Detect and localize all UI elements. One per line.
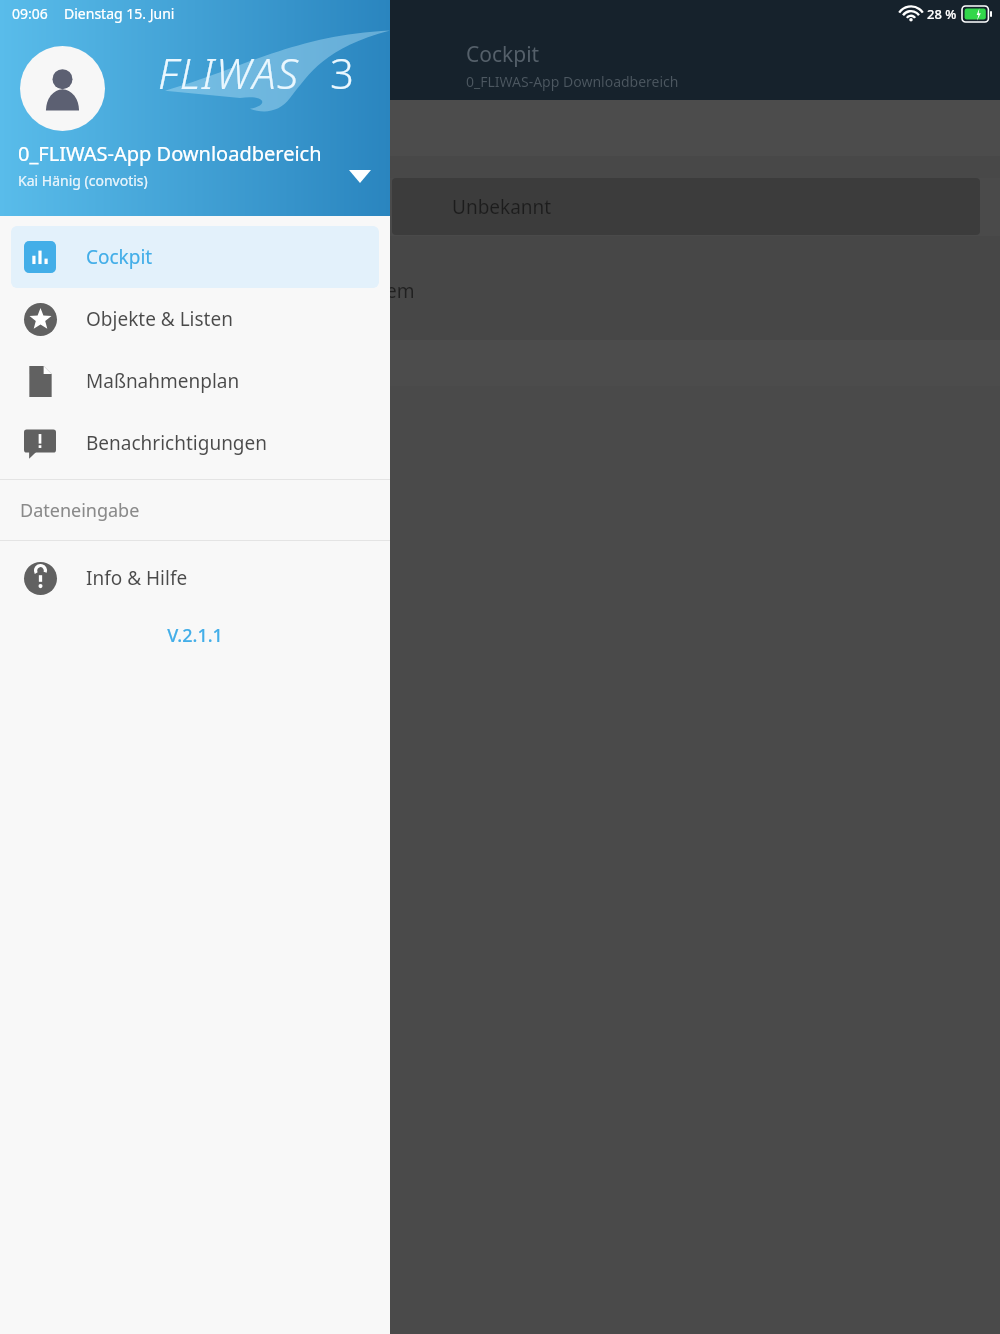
- staticText: 3: [330, 44, 354, 101]
- staticText: Unbekannt: [452, 194, 552, 220]
- staticText: Kai Hänig (convotis): [18, 171, 148, 190]
- button[interactable]: Info & Hilfe: [11, 547, 379, 609]
- staticText: em: [386, 278, 415, 304]
- staticText: Cockpit: [466, 40, 540, 69]
- button[interactable]: Cockpit: [11, 226, 379, 288]
- button[interactable]: FLIWAS: [0, 0, 390, 216]
- staticText: Maßnahmenplan: [86, 368, 240, 394]
- staticText: Objekte & Listen: [86, 306, 233, 332]
- staticText: Info & Hilfe: [86, 565, 188, 591]
- button[interactable]: V.2.1.1: [155, 619, 235, 652]
- button[interactable]: Maßnahmenplan: [11, 350, 379, 412]
- staticText: Cockpit: [86, 244, 153, 270]
- button[interactable]: Objekte & Listen: [11, 288, 379, 350]
- button[interactable]: Konto wechseln: [338, 154, 382, 198]
- staticText: Benachrichtigungen: [86, 430, 268, 456]
- staticText: Dateneingabe: [20, 498, 140, 523]
- staticText: FLIWAS: [158, 44, 300, 101]
- staticText: 28 %: [927, 5, 957, 23]
- staticText: Dienstag 15. Juni: [64, 4, 175, 23]
- staticText: 09:06: [12, 4, 48, 23]
- staticText: 0_FLIWAS-App Downloadbereich: [466, 72, 679, 91]
- button[interactable]: Benachrichtigungen: [11, 412, 379, 474]
- staticText: 0_FLIWAS-App Downloadbereich: [18, 140, 322, 167]
